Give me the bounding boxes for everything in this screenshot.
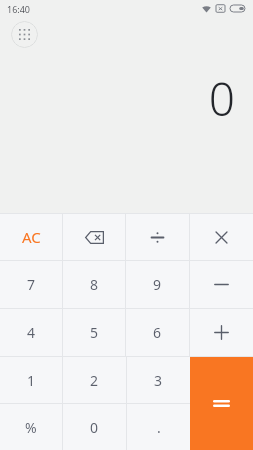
button[interactable]: 2 bbox=[63, 357, 126, 403]
button[interactable]: 6 bbox=[126, 309, 189, 356]
staticText: . bbox=[157, 418, 161, 437]
staticText: 0 bbox=[208, 67, 235, 130]
staticText: 3 bbox=[154, 371, 163, 390]
staticText: 16:40 bbox=[7, 3, 31, 15]
button[interactable]: Menu bbox=[11, 21, 38, 48]
staticText: 1 bbox=[27, 371, 36, 390]
button[interactable]: Divide bbox=[126, 214, 189, 260]
staticText: 7 bbox=[27, 275, 36, 294]
staticText: 6 bbox=[153, 323, 162, 342]
staticText: 5 bbox=[90, 323, 99, 342]
button[interactable]: Multiply bbox=[190, 214, 253, 260]
button[interactable]: 5 bbox=[63, 309, 125, 356]
button[interactable]: 8 bbox=[63, 261, 125, 308]
button[interactable]: 1 bbox=[0, 357, 62, 403]
button[interactable]: Backspace bbox=[63, 214, 125, 260]
button[interactable]: 4 bbox=[0, 309, 62, 356]
staticText: 4 bbox=[27, 323, 36, 342]
staticText: AC bbox=[22, 227, 41, 247]
button[interactable]: Equals bbox=[190, 357, 253, 450]
button[interactable]: 9 bbox=[126, 261, 189, 308]
staticText: 0 bbox=[90, 418, 99, 437]
staticText: 9 bbox=[153, 275, 162, 294]
staticText: 2 bbox=[90, 371, 99, 390]
button[interactable]: Plus bbox=[190, 309, 253, 356]
button[interactable]: 0 bbox=[63, 404, 126, 450]
button[interactable]: . bbox=[127, 404, 190, 450]
staticText: % bbox=[25, 418, 37, 437]
button[interactable]: Minus bbox=[190, 261, 253, 308]
button[interactable]: 3 bbox=[127, 357, 190, 403]
button[interactable]: AC bbox=[0, 214, 62, 260]
button[interactable]: 7 bbox=[0, 261, 62, 308]
staticText: 8 bbox=[90, 275, 99, 294]
button[interactable]: % bbox=[0, 404, 62, 450]
